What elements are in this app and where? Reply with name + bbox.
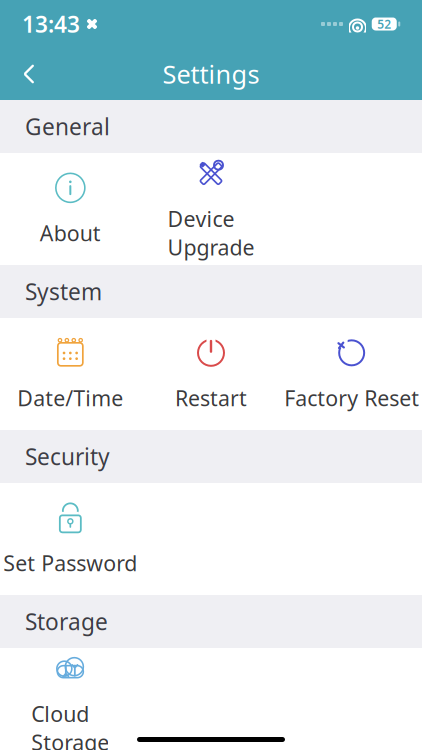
staticText: Set Password <box>3 549 137 577</box>
staticText: System <box>25 276 102 306</box>
staticText: Security <box>25 441 110 471</box>
button[interactable]: Factory Reset <box>281 318 422 430</box>
staticText: Restart <box>175 384 247 412</box>
staticText: 52 <box>377 16 391 32</box>
staticText: Device Upgrade <box>167 205 254 261</box>
staticText: Storage <box>25 606 108 636</box>
button[interactable]: Device Upgrade <box>141 153 281 265</box>
button[interactable]: Cloud Storage <box>0 648 141 750</box>
staticText: Settings <box>162 57 259 91</box>
button[interactable]: Back <box>12 54 46 94</box>
staticText: Date/Time <box>17 384 123 412</box>
button[interactable]: Restart <box>141 318 281 430</box>
button[interactable]: Set Password <box>0 483 141 595</box>
staticText: About <box>40 219 101 247</box>
button[interactable]: Date/Time <box>0 318 141 430</box>
staticText: 13:43 <box>22 9 80 39</box>
staticText: General <box>25 111 110 141</box>
staticText: Cloud Storage <box>31 700 109 750</box>
button[interactable]: About <box>0 153 141 265</box>
staticText: Factory Reset <box>284 384 419 412</box>
